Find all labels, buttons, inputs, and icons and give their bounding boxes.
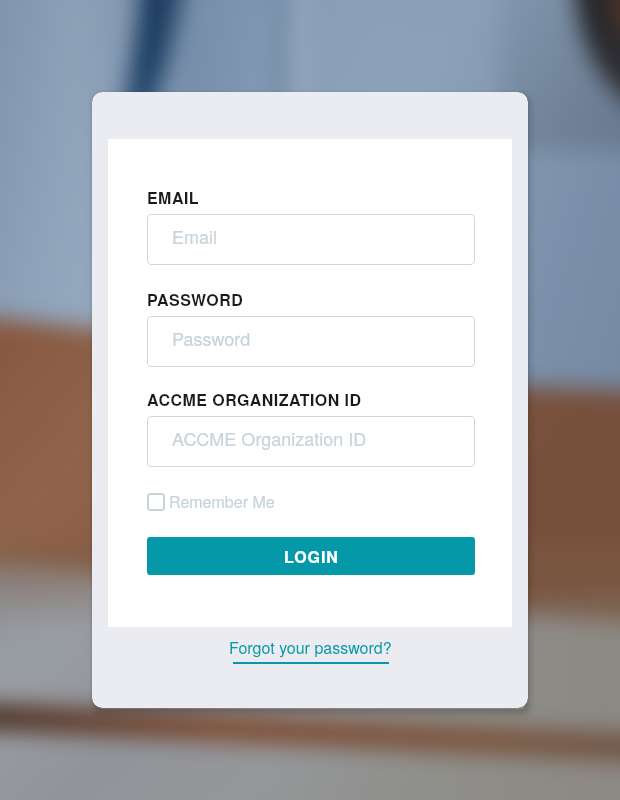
staticText: PASSWORD bbox=[147, 288, 244, 311]
button[interactable]: Password bbox=[147, 316, 475, 367]
button[interactable]: Remember Me bbox=[147, 490, 275, 513]
staticText: Email bbox=[172, 223, 217, 249]
button[interactable]: ACCME Organization ID bbox=[147, 416, 475, 467]
button[interactable]: Email bbox=[147, 214, 475, 265]
staticText: ACCME Organization ID bbox=[172, 425, 367, 451]
staticText: Password bbox=[172, 325, 251, 351]
staticText: LOGIN bbox=[284, 545, 339, 568]
staticText: ACCME ORGANIZATION ID bbox=[147, 388, 362, 411]
staticText: EMAIL bbox=[147, 186, 200, 209]
staticText: Forgot your password? bbox=[229, 636, 392, 659]
staticText: Remember Me bbox=[169, 490, 275, 513]
button[interactable]: LOGIN bbox=[147, 537, 475, 575]
button[interactable]: Forgot your password? bbox=[229, 636, 392, 664]
